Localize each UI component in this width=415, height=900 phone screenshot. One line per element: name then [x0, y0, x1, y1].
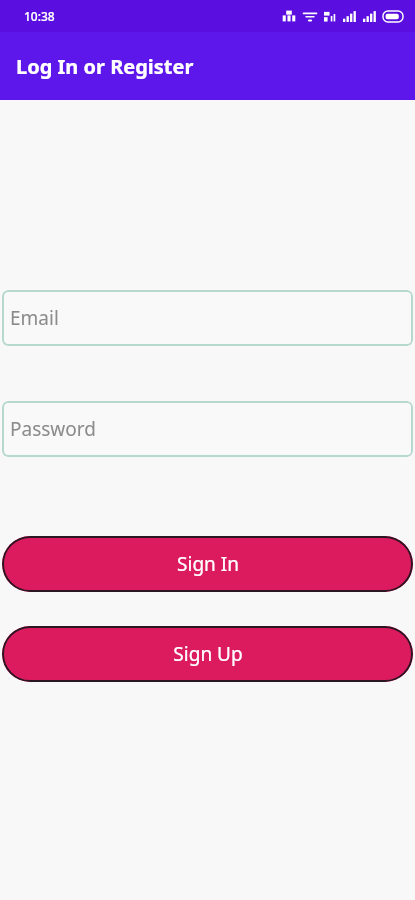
staticText: Sign Up	[173, 641, 243, 667]
button[interactable]: Password	[2, 401, 413, 457]
staticText: Password	[10, 416, 96, 442]
button[interactable]: Sign Up	[2, 626, 413, 682]
staticText: Log In or Register	[16, 53, 194, 80]
staticText: Sign In	[177, 551, 239, 577]
staticText: 10:38	[24, 8, 55, 24]
staticText: Email	[10, 305, 59, 331]
button[interactable]: Sign In	[2, 536, 413, 592]
button[interactable]: Email	[2, 290, 413, 346]
